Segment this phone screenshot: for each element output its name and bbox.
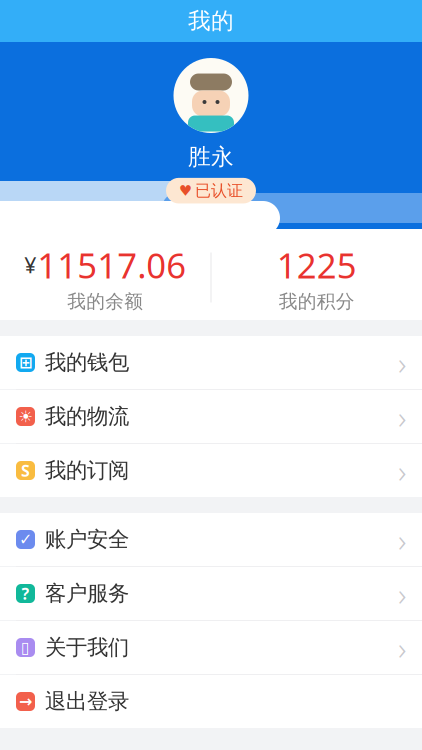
button[interactable]: ⊞ [0, 336, 422, 389]
staticText: 客户服务 [45, 580, 129, 607]
staticText: ☀ [18, 407, 32, 426]
button[interactable]: → [0, 675, 422, 728]
staticText: 我的订阅 [45, 457, 129, 484]
staticText: → [19, 692, 32, 711]
staticText: 1225 [277, 242, 357, 288]
button[interactable]: ✓ [0, 513, 422, 566]
staticText: › [398, 395, 406, 438]
button[interactable]: ▯ [0, 621, 422, 674]
staticText: ? [21, 583, 29, 604]
staticText: › [398, 626, 406, 669]
staticText: › [398, 341, 406, 384]
staticText: 11517.06 [37, 242, 186, 288]
staticText: 我的物流 [45, 403, 129, 430]
staticText: 胜永 [188, 143, 234, 171]
button[interactable]: S [0, 444, 422, 497]
staticText: S [21, 460, 30, 481]
staticText: ⊞ [19, 353, 32, 372]
button[interactable]: ? [0, 567, 422, 620]
staticText: ♥ [179, 182, 192, 199]
staticText: 我的钱包 [45, 349, 129, 376]
staticText: › [398, 449, 406, 492]
staticText: 已认证 [195, 181, 243, 200]
staticText: 我的 [188, 7, 234, 35]
staticText: ▯ [21, 638, 30, 657]
staticText: 关于我们 [45, 634, 129, 661]
staticText: 退出登录 [45, 688, 129, 715]
staticText: ✓ [19, 530, 32, 549]
staticText: › [398, 518, 406, 561]
button[interactable]: ☀ [0, 390, 422, 443]
staticText: › [398, 572, 406, 615]
staticText: 我的积分 [279, 290, 355, 313]
staticText: ¥ [24, 251, 36, 279]
staticText: 我的余额 [67, 290, 143, 313]
staticText: 账户安全 [45, 526, 129, 553]
